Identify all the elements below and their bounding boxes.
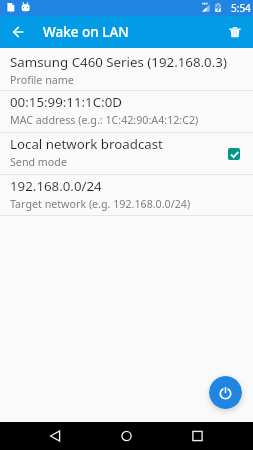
button[interactable]: 00:15:99:11:1C:0D (0, 91, 253, 133)
staticText: 00:15:99:11:1C:0D (10, 93, 122, 111)
staticText: Target network (e.g. 192.168.0.0/24) (10, 197, 191, 212)
staticText: 192.168.0.0/24 (10, 177, 102, 195)
staticText: Local network broadcast (10, 135, 163, 153)
staticText: 5:54 (231, 1, 251, 15)
button[interactable]: Navigate up (0, 16, 32, 48)
button[interactable]: Delete (219, 16, 251, 48)
button[interactable]: Samsung C460 Series (192.168.0.3) (0, 48, 253, 91)
button[interactable]: Recent apps (168, 422, 253, 450)
staticText: Send mode (10, 155, 67, 170)
button[interactable]: Wake device (209, 376, 242, 409)
button[interactable]: Back (0, 422, 84, 450)
button[interactable]: Local network broadcast (0, 133, 253, 175)
staticText: Wake on LAN (43, 23, 129, 41)
staticText: Profile name (10, 73, 74, 88)
staticText: Samsung C460 Series (192.168.0.3) (10, 53, 227, 71)
button[interactable]: Local network broadcast toggle (228, 148, 240, 160)
button[interactable]: Home (84, 422, 168, 450)
staticText: MAC address (e.g.: 1C:42:90:A4:12:C2) (10, 113, 199, 128)
button[interactable]: 192.168.0.0/24 (0, 175, 253, 216)
